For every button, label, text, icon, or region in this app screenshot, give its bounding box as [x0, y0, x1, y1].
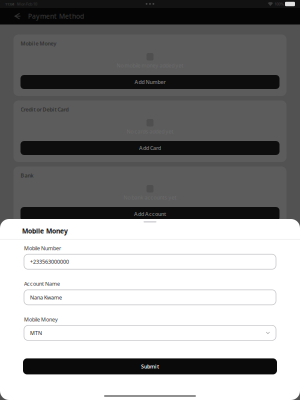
button[interactable]: Nana Kwame: [24, 290, 276, 305]
staticText: Add Number: [134, 78, 165, 86]
button[interactable]: Add Number: [20, 75, 279, 89]
button[interactable]: Submit: [23, 358, 277, 374]
staticText: Mon Feb 10: [14, 1, 37, 7]
staticText: Mobile Money: [22, 227, 68, 235]
staticText: 100%: [274, 1, 283, 7]
staticText: Mobile Number: [24, 245, 61, 252]
staticText: Add Account: [134, 210, 166, 218]
staticText: MTN: [30, 329, 42, 336]
staticText: 11:04: [5, 1, 14, 7]
staticText: Nana Kwame: [30, 294, 62, 301]
staticText: +233563000000: [30, 258, 69, 265]
button[interactable]: MTN: [24, 325, 276, 340]
staticText: Credit or Debit Card: [20, 106, 68, 113]
staticText: Account Name: [24, 280, 60, 287]
staticText: Mobile Money: [24, 316, 58, 323]
button[interactable]: Back: [10, 9, 25, 24]
button[interactable]: Add Account: [20, 207, 279, 221]
button[interactable]: Add Card: [20, 141, 279, 155]
staticText: Add Card: [139, 144, 161, 152]
staticText: Submit: [141, 363, 159, 370]
staticText: Payment Method: [28, 12, 84, 21]
staticText: Mobile Money: [20, 40, 56, 47]
button[interactable]: +233563000000: [24, 254, 276, 269]
staticText: Bank: [20, 172, 33, 179]
